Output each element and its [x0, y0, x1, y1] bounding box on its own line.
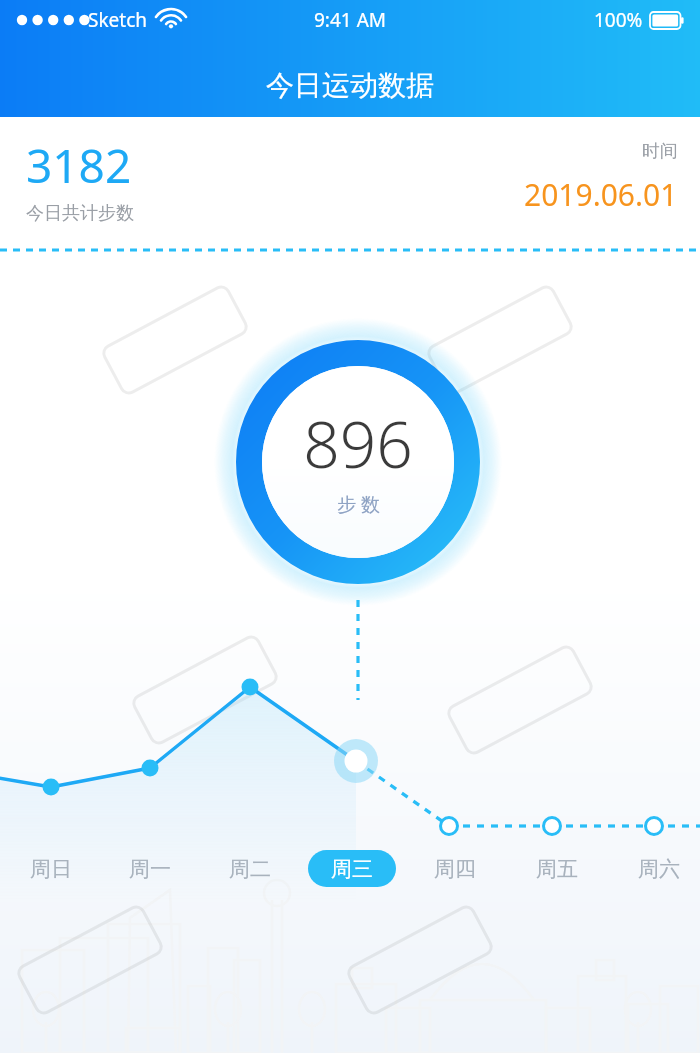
other: Wi-Fi: [160, 12, 182, 29]
button[interactable]: 周五: [513, 850, 601, 887]
staticText: Sketch: [88, 7, 148, 33]
staticText: 周二: [229, 856, 271, 882]
staticText: 896: [303, 400, 413, 487]
staticText: 步 数: [337, 491, 380, 517]
staticText: 周日: [30, 856, 72, 882]
staticText: 今日运动数据: [266, 68, 434, 103]
staticText: 100%: [594, 7, 643, 33]
button[interactable]: 周四: [411, 850, 499, 887]
staticText: 时间: [642, 140, 678, 163]
staticText: 3182: [26, 134, 132, 197]
staticText: 9:41 AM: [314, 7, 387, 33]
staticText: 2019.06.01: [524, 174, 678, 215]
staticText: 周六: [638, 856, 680, 882]
staticText: 周四: [434, 856, 476, 882]
button[interactable]: 周三: [308, 850, 396, 887]
staticText: 周三: [331, 856, 373, 882]
staticText: 周五: [536, 856, 578, 882]
staticText: 今日共计步数: [26, 202, 134, 225]
other: Battery: [650, 12, 684, 29]
staticText: 周一: [129, 856, 171, 882]
button[interactable]: 896: [248, 400, 468, 517]
button[interactable]: 周一: [106, 850, 194, 887]
button[interactable]: 周二: [206, 850, 294, 887]
button[interactable]: 周六: [615, 850, 700, 887]
button[interactable]: 周日: [7, 850, 95, 887]
